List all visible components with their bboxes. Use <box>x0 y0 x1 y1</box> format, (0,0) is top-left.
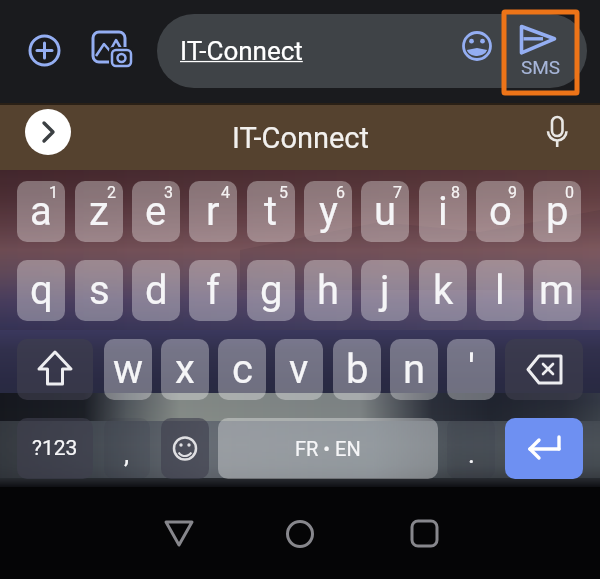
button[interactable]: z <box>75 181 123 242</box>
button[interactable] <box>276 510 324 558</box>
button[interactable]: e <box>132 181 180 242</box>
staticText: 9 <box>508 183 517 202</box>
staticText: 7 <box>393 183 402 202</box>
staticText: k <box>433 267 454 314</box>
staticText: p <box>546 188 569 235</box>
button[interactable] <box>505 418 583 479</box>
button[interactable]: ?123 <box>17 418 93 479</box>
staticText: q <box>30 267 53 314</box>
staticText: t <box>264 188 278 235</box>
staticText: n <box>403 346 426 393</box>
staticText: e <box>145 188 167 235</box>
button[interactable]: FR • EN <box>218 418 438 479</box>
button[interactable]: u <box>361 181 409 242</box>
button[interactable]: k <box>419 260 467 321</box>
button[interactable]: a <box>17 181 65 242</box>
staticText: f <box>206 267 220 314</box>
staticText: d <box>145 267 168 314</box>
staticText: h <box>317 267 340 314</box>
button[interactable]: f <box>189 260 237 321</box>
staticText: y <box>319 188 338 235</box>
staticText: i <box>438 188 448 235</box>
button[interactable] <box>453 22 501 70</box>
staticText: b <box>346 346 369 393</box>
staticText: 0 <box>565 183 574 202</box>
button[interactable]: . <box>447 418 495 479</box>
button[interactable]: h <box>304 260 352 321</box>
button[interactable]: b <box>333 339 381 400</box>
button[interactable]: i <box>419 181 467 242</box>
button[interactable]: l <box>476 260 524 321</box>
button[interactable]: w <box>104 339 152 400</box>
staticText: . <box>468 439 475 469</box>
button[interactable] <box>533 108 581 156</box>
button[interactable] <box>155 510 203 558</box>
button[interactable] <box>25 109 71 155</box>
button[interactable]: n <box>390 339 438 400</box>
button[interactable]: x <box>161 339 209 400</box>
button[interactable]: g <box>247 260 295 321</box>
button[interactable]: p <box>533 181 581 242</box>
button[interactable]: o <box>476 181 524 242</box>
button[interactable]: q <box>17 260 65 321</box>
staticText: 2 <box>107 183 116 202</box>
button[interactable] <box>504 12 578 93</box>
staticText: , <box>124 439 130 469</box>
staticText: c <box>232 346 253 393</box>
button[interactable] <box>20 26 69 75</box>
staticText: w <box>113 346 144 393</box>
staticText: FR • EN <box>295 437 361 460</box>
staticText: 6 <box>336 183 345 202</box>
button[interactable] <box>161 418 209 479</box>
staticText: IT-Connect <box>180 36 303 66</box>
staticText: 8 <box>451 183 460 202</box>
staticText: ' <box>468 346 475 393</box>
staticText: x <box>175 346 195 393</box>
button[interactable]: j <box>361 260 409 321</box>
button[interactable] <box>400 510 448 558</box>
button[interactable]: v <box>275 339 323 400</box>
button[interactable] <box>505 339 583 400</box>
staticText: 5 <box>279 183 288 202</box>
staticText: IT-Connect <box>232 121 369 155</box>
staticText: s <box>89 267 110 314</box>
button[interactable]: IT-Connect <box>157 14 587 88</box>
staticText: 1 <box>49 183 58 202</box>
staticText: z <box>89 188 109 235</box>
staticText: u <box>374 188 397 235</box>
button[interactable] <box>88 27 136 75</box>
button[interactable]: ' <box>447 339 495 400</box>
staticText: a <box>30 188 52 235</box>
staticText: 3 <box>164 183 173 202</box>
staticText: 4 <box>221 183 230 202</box>
button[interactable]: c <box>218 339 266 400</box>
staticText: r <box>206 188 220 235</box>
button[interactable]: t <box>247 181 295 242</box>
staticText: g <box>260 267 283 314</box>
button[interactable] <box>17 339 93 400</box>
staticText: ?123 <box>32 436 78 461</box>
staticText: SMS <box>521 56 561 78</box>
button[interactable]: , <box>104 418 150 479</box>
staticText: o <box>489 188 512 235</box>
staticText: v <box>289 346 309 393</box>
staticText: m <box>539 267 575 314</box>
button[interactable]: s <box>75 260 123 321</box>
button[interactable]: r <box>189 181 237 242</box>
button[interactable]: y <box>304 181 352 242</box>
staticText: j <box>380 267 390 314</box>
button[interactable]: m <box>533 260 581 321</box>
button[interactable]: d <box>132 260 180 321</box>
staticText: l <box>495 267 505 314</box>
